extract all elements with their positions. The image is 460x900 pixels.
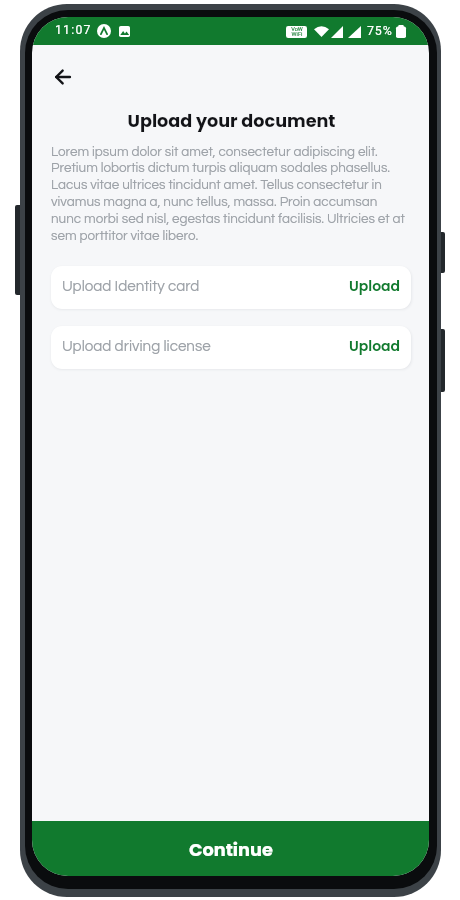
button[interactable]: Upload Identity card xyxy=(51,266,411,309)
staticText: Continue xyxy=(189,837,273,862)
other: Screenshot xyxy=(119,26,130,37)
staticText: VoW WiFi xyxy=(291,26,303,38)
staticText: Upload your document xyxy=(33,109,429,134)
other: App notification xyxy=(97,24,111,38)
button[interactable]: Upload driving license xyxy=(51,326,411,369)
staticText: Upload xyxy=(349,336,401,356)
other: Wi-Fi xyxy=(314,26,329,37)
staticText: Lorem ipsum dolor sit amet, consectetur … xyxy=(51,145,405,243)
button[interactable]: Back xyxy=(51,65,75,89)
other: Battery 75 percent xyxy=(396,25,406,38)
staticText: Upload xyxy=(349,276,401,296)
staticText: Upload Identity card xyxy=(62,279,200,295)
staticText: Upload driving license xyxy=(62,339,211,355)
staticText: 75% xyxy=(367,23,393,38)
button[interactable]: Continue xyxy=(32,821,429,876)
staticText: 11:07 xyxy=(55,23,92,37)
